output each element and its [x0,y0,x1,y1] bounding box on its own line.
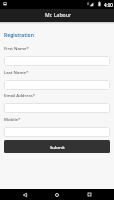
staticText: Email Address* [4,92,36,98]
staticText: Submit [50,144,65,150]
staticText: Last Name* [4,69,29,75]
staticText: 4:00 [104,2,113,8]
button[interactable]: Submit [4,140,110,153]
staticText: Mr. Labour [45,12,72,19]
button[interactable] [4,127,110,137]
staticText: Mobile* [4,116,21,122]
button[interactable] [4,56,110,66]
staticText: Registration [4,32,34,39]
staticText: First Name* [4,45,29,51]
button[interactable] [4,80,110,90]
button[interactable]: Home [41,189,73,200]
button[interactable] [4,103,110,113]
button[interactable]: Back [9,189,41,200]
button[interactable]: Recent apps [73,189,105,200]
